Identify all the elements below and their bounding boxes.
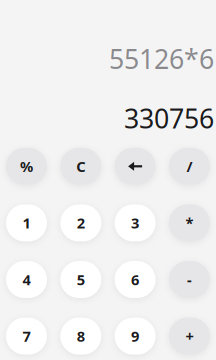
staticText: 2 <box>77 213 85 233</box>
button[interactable]: 7 <box>6 318 47 355</box>
staticText: C <box>76 157 85 176</box>
button[interactable]: - <box>169 261 210 298</box>
button[interactable]: 3 <box>115 204 156 241</box>
staticText: 5 <box>77 270 85 289</box>
button[interactable]: 1 <box>6 204 47 241</box>
staticText: 55126*6 <box>109 41 214 76</box>
staticText: + <box>185 326 193 346</box>
staticText: % <box>20 157 33 176</box>
staticText: / <box>186 157 192 176</box>
staticText: 3 <box>131 213 139 233</box>
button[interactable]: 4 <box>6 261 47 298</box>
button[interactable]: 8 <box>60 318 101 355</box>
button[interactable]: + <box>169 318 210 355</box>
staticText: 9 <box>131 326 139 346</box>
staticText: 1 <box>22 213 30 233</box>
staticText: 330756 <box>124 100 214 136</box>
staticText: - <box>187 270 192 289</box>
button[interactable]: * <box>169 204 210 241</box>
button[interactable]: Delete <box>115 148 156 185</box>
button[interactable]: C <box>60 148 101 185</box>
staticText: 4 <box>22 270 30 289</box>
button[interactable]: 6 <box>115 261 156 298</box>
button[interactable]: / <box>169 148 210 185</box>
button[interactable]: 2 <box>60 204 101 241</box>
staticText: * <box>185 213 193 233</box>
staticText: 6 <box>131 270 139 289</box>
button[interactable]: 5 <box>60 261 101 298</box>
staticText: 8 <box>77 326 85 346</box>
button[interactable]: 9 <box>115 318 156 355</box>
staticText: 7 <box>22 326 30 346</box>
button[interactable]: % <box>6 148 47 185</box>
